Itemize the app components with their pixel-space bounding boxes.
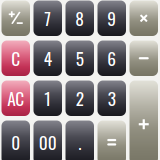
staticText: 3 — [108, 85, 116, 111]
button[interactable]: 9 — [97, 0, 126, 36]
button[interactable]: 8 — [65, 0, 94, 36]
staticText: 5 — [76, 45, 84, 71]
button[interactable]: Plus minus — [1, 0, 30, 36]
button[interactable]: 1 — [33, 80, 62, 116]
staticText: 0 — [11, 129, 20, 155]
button[interactable]: Plus — [129, 80, 158, 160]
staticText: 8 — [75, 5, 84, 31]
button[interactable]: 4 — [33, 40, 62, 76]
button[interactable]: Equals — [97, 120, 126, 160]
staticText: C — [11, 45, 20, 71]
staticText: 2 — [76, 85, 84, 111]
button[interactable]: 6 — [97, 40, 126, 76]
button[interactable]: 0 — [1, 120, 30, 160]
button[interactable]: . — [65, 120, 94, 160]
staticText: 00 — [39, 129, 57, 155]
staticText: 4 — [44, 45, 52, 71]
staticText: . — [78, 129, 81, 155]
button[interactable]: 2 — [65, 80, 94, 116]
button[interactable]: 7 — [33, 0, 62, 36]
button[interactable]: 00 — [33, 120, 62, 160]
staticText: 9 — [107, 5, 116, 31]
staticText: 1 — [44, 85, 51, 111]
button[interactable]: AC — [1, 80, 30, 116]
staticText: 7 — [44, 5, 51, 31]
button[interactable]: Minus — [129, 40, 158, 76]
button[interactable]: C — [1, 40, 30, 76]
staticText: 6 — [107, 45, 116, 71]
button[interactable]: 5 — [65, 40, 94, 76]
staticText: AC — [7, 85, 24, 111]
button[interactable]: 3 — [97, 80, 126, 116]
button[interactable]: Multiply — [129, 0, 158, 36]
